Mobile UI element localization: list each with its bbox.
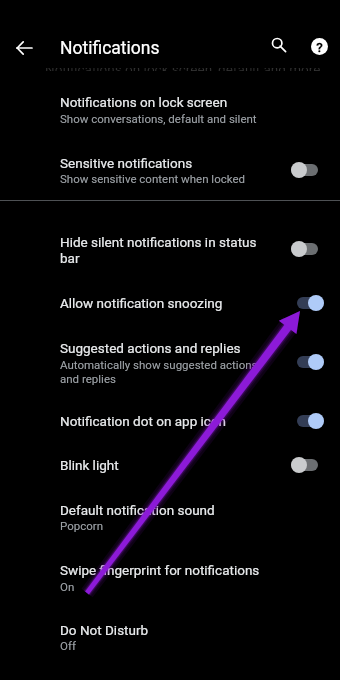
staticText: Hide silent notifications in status bar xyxy=(60,234,266,267)
button[interactable]: Back xyxy=(15,39,32,56)
button[interactable]: Do Not Disturb xyxy=(0,609,340,666)
staticText: Show sensitive content when locked xyxy=(60,172,246,185)
staticText: Notifications on lock screen xyxy=(60,94,228,110)
button[interactable]: Switch off xyxy=(291,162,318,178)
button[interactable]: Switch on xyxy=(297,295,324,311)
staticText: Notifications on lock screen, default an… xyxy=(45,61,321,77)
staticText: Show conversations, default and silent xyxy=(60,112,257,125)
button[interactable]: Notification dot on app icon xyxy=(0,399,340,442)
staticText: Suggested actions and replies xyxy=(60,340,241,356)
staticText: Notifications xyxy=(60,38,160,59)
staticText: Blink light xyxy=(60,457,119,473)
staticText: Default notification sound xyxy=(60,502,215,518)
staticText: On xyxy=(60,580,75,593)
staticText: Off xyxy=(60,639,76,652)
staticText: Notification dot on app icon xyxy=(60,413,227,429)
button[interactable]: Help xyxy=(311,38,328,55)
staticText: ? xyxy=(316,39,323,55)
button[interactable]: Notifications on lock screen xyxy=(0,82,340,139)
button[interactable]: Suggested actions and replies xyxy=(0,327,340,397)
button[interactable]: Switch on xyxy=(297,413,324,429)
staticText: Automatically show suggested actions and… xyxy=(60,358,266,386)
staticText: Sensitive notifications xyxy=(60,155,193,171)
button[interactable]: Swipe fingerprint for notifications xyxy=(0,549,340,606)
staticText: Do Not Disturb xyxy=(60,622,149,638)
staticText: Allow notification snoozing xyxy=(60,295,223,311)
staticText: Swipe fingerprint for notifications xyxy=(60,562,260,578)
button[interactable]: Search xyxy=(272,38,288,54)
button[interactable]: Default notification sound xyxy=(0,489,340,546)
button[interactable]: Switch off xyxy=(291,457,318,473)
button[interactable]: Switch on xyxy=(297,354,324,370)
staticText: Popcorn xyxy=(60,519,104,532)
button[interactable]: Sensitive notifications xyxy=(0,143,340,199)
button[interactable]: Hide silent notifications in status bar xyxy=(0,220,340,277)
button[interactable]: Allow notification snoozing xyxy=(0,281,340,324)
button[interactable]: Switch off xyxy=(291,241,318,257)
button[interactable]: Blink light xyxy=(0,443,340,486)
